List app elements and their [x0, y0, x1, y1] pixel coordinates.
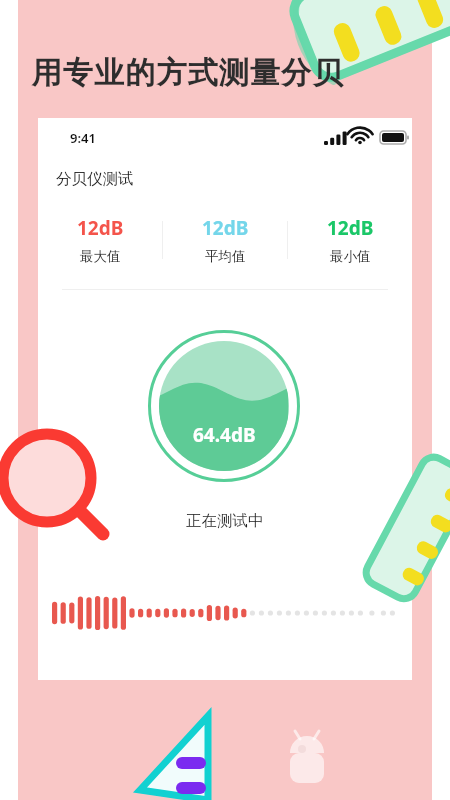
staticText: 64.4dB [193, 422, 256, 448]
staticText: 平均值 [205, 248, 246, 265]
staticText: 最小值 [330, 248, 371, 265]
button[interactable]: 12dB [38, 215, 162, 265]
button[interactable]: 12dB [163, 215, 287, 265]
staticText: 12dB [77, 215, 124, 241]
staticText: 9:41 [70, 129, 96, 147]
button[interactable]: 12dB [288, 215, 412, 265]
staticText: 12dB [327, 215, 374, 241]
staticText: 正在测试中 [186, 511, 264, 531]
staticText: 用专业的方式测量分贝 [31, 54, 343, 92]
staticText: 分贝仪测试 [56, 169, 134, 189]
staticText: 12dB [202, 215, 249, 241]
staticText: 最大值 [80, 248, 121, 265]
button[interactable]: Decibel level gauge [148, 330, 300, 482]
